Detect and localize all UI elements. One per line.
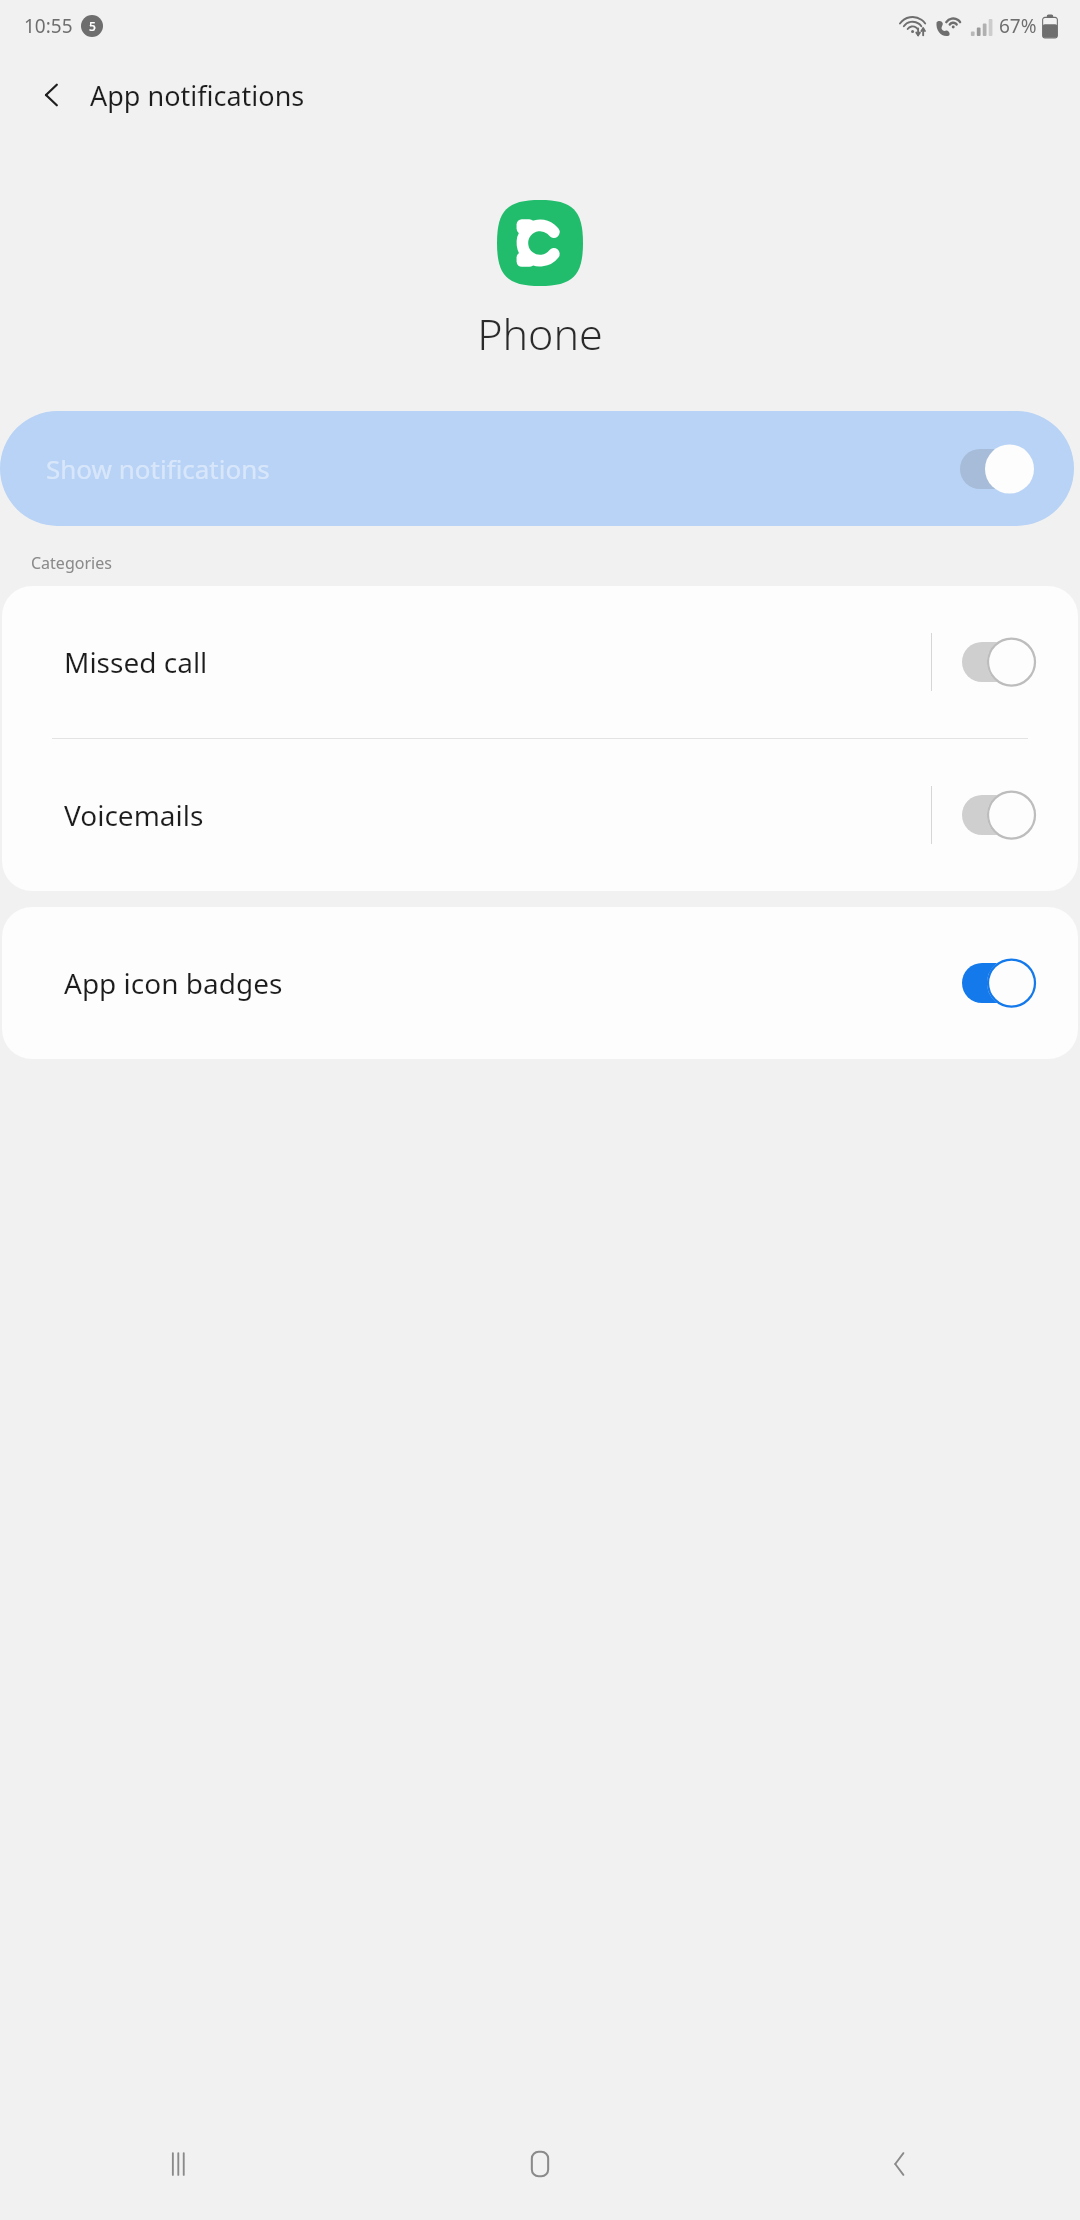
other: Toggle [960,444,1034,494]
staticText: Phone [477,304,603,363]
button[interactable]: App icon badges [2,907,1078,1059]
staticText: Show notifications [46,451,270,486]
button[interactable]: Voicemails [2,739,1078,891]
staticText: App notifications [90,77,305,114]
staticText: 5 [89,18,96,34]
other: Toggle [962,637,1036,687]
other: Toggle [962,790,1036,840]
other: Toggle [962,958,1036,1008]
button[interactable]: Missed call [2,586,1078,738]
staticText: App icon badges [64,964,962,1002]
button[interactable]: Back [720,2108,1080,2220]
staticText: Voicemails [64,796,931,834]
button[interactable]: Home [360,2108,720,2220]
staticText: 10:55 [24,13,73,39]
staticText: 67% [999,13,1037,39]
button[interactable]: Back [24,67,80,123]
staticText: Missed call [64,643,931,681]
button[interactable]: Show notifications [0,411,1074,526]
button[interactable]: Recent apps [0,2108,360,2220]
staticText: Categories [31,552,112,574]
